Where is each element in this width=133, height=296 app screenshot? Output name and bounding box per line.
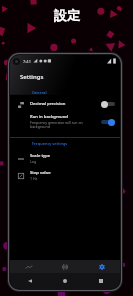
staticText: Decimal precision — [30, 101, 66, 107]
button[interactable]: Settings — [84, 260, 120, 273]
button[interactable]: Back — [14, 273, 46, 289]
button[interactable]: Run in background — [10, 111, 120, 132]
button[interactable]: Scale type — [10, 150, 120, 167]
button[interactable]: Recents — [85, 273, 117, 289]
staticText: Frequency settings — [32, 141, 68, 146]
staticText: Step value — [30, 170, 51, 176]
staticText: 設定 — [54, 7, 80, 23]
button[interactable]: Decimal precision — [10, 97, 120, 111]
staticText: Scale type — [30, 153, 51, 159]
button[interactable]: Step value — [10, 167, 120, 184]
button[interactable]: Sine wave — [11, 260, 47, 273]
staticText: Log — [30, 159, 37, 164]
staticText: 7:41 — [23, 59, 31, 64]
button[interactable]: Noise — [47, 260, 83, 273]
staticText: Frequency generator will run on backgrou… — [30, 120, 83, 129]
staticText: General — [32, 90, 47, 95]
staticText: 1 Hz — [30, 176, 38, 181]
staticText: Settings — [20, 73, 44, 81]
button[interactable]: Home — [49, 273, 81, 289]
staticText: Run in background — [30, 114, 68, 120]
